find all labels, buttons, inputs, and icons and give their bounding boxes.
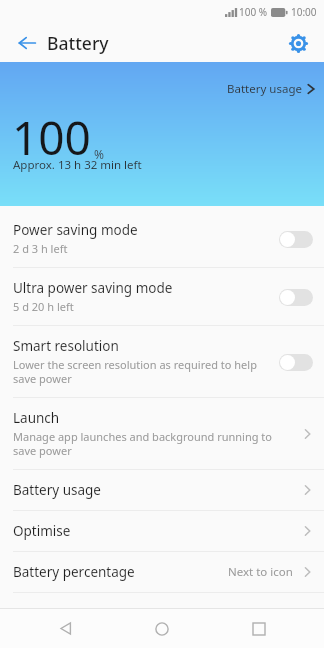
button[interactable]: Launch	[0, 398, 324, 469]
staticText: Battery usage	[227, 81, 302, 97]
staticText: 5 d 20 h left	[13, 299, 74, 314]
staticText: Lower the screen resolution as required …	[13, 357, 258, 386]
button[interactable]: Recent apps	[228, 609, 290, 648]
staticText: Ultra power saving mode	[13, 279, 173, 297]
button[interactable]: Toggle off	[276, 349, 316, 375]
button[interactable]: Back	[8, 24, 46, 62]
button[interactable]: Optimise	[0, 511, 324, 551]
staticText: %	[94, 146, 104, 162]
button[interactable]: Smart resolution	[0, 326, 324, 397]
staticText: Approx. 13 h 32 min left	[13, 157, 142, 173]
button[interactable]: Toggle off	[276, 284, 316, 310]
button[interactable]: Toggle off	[276, 226, 316, 252]
staticText: Power saving mode	[13, 221, 138, 239]
button[interactable]: Battery usage	[0, 470, 324, 510]
staticText: Battery usage	[13, 481, 101, 499]
staticText: 100 %	[239, 5, 268, 19]
button[interactable]: Battery percentage	[0, 552, 324, 592]
button[interactable]: Ultra power saving mode	[0, 268, 324, 325]
button[interactable]: Home	[131, 609, 193, 648]
staticText: 10:00	[291, 5, 317, 19]
staticText: Launch	[13, 409, 60, 427]
button[interactable]: Back	[35, 609, 97, 648]
staticText: 2 d 3 h left	[13, 241, 68, 256]
staticText: Manage app launches and background runni…	[13, 429, 291, 458]
staticText: Next to icon	[228, 564, 293, 580]
staticText: Battery percentage	[13, 563, 135, 581]
button[interactable]: Settings	[280, 25, 316, 61]
staticText: Smart resolution	[13, 337, 119, 355]
staticText: Battery	[47, 31, 109, 55]
staticText: Optimise	[13, 522, 71, 540]
button[interactable]: Power saving mode	[0, 210, 324, 267]
staticText: 100	[12, 106, 91, 169]
button[interactable]: Battery usage	[227, 81, 315, 97]
